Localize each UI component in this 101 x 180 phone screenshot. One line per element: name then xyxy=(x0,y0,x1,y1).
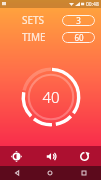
button[interactable]: Recents xyxy=(67,166,101,180)
button[interactable]: 40 xyxy=(12,58,90,136)
button[interactable]: 60 xyxy=(62,32,95,43)
button[interactable]: Back xyxy=(0,166,33,180)
staticText: 60 xyxy=(74,32,84,43)
staticText: TIME xyxy=(22,30,46,44)
button[interactable]: 3 xyxy=(62,15,95,26)
staticText: 3 xyxy=(76,15,81,26)
button[interactable]: Brightness xyxy=(0,146,33,166)
staticText: 00:48 xyxy=(86,1,99,8)
staticText: SETS xyxy=(22,13,45,27)
button[interactable]: Home xyxy=(33,166,67,180)
button[interactable]: Sound xyxy=(33,146,67,166)
staticText: 40 xyxy=(42,87,60,107)
button[interactable]: Reset xyxy=(67,146,101,166)
